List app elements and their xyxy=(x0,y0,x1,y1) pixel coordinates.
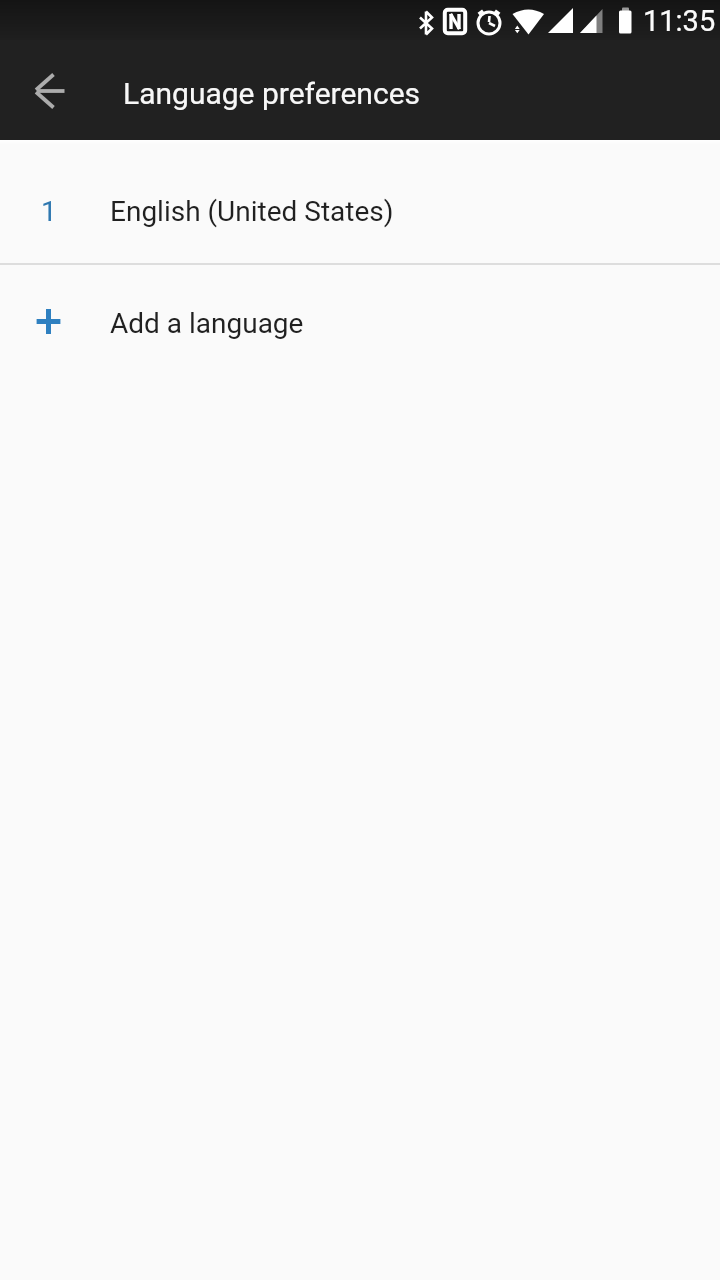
staticText: English (United States) xyxy=(110,195,394,228)
button[interactable]: 1 xyxy=(0,140,720,263)
staticText: Add a language xyxy=(110,307,304,340)
staticText: 1 xyxy=(41,195,57,228)
button[interactable]: Add a language xyxy=(0,265,720,381)
staticText: Language preferences xyxy=(123,76,421,111)
button[interactable] xyxy=(22,62,78,118)
staticText: 11:35 xyxy=(643,4,716,38)
